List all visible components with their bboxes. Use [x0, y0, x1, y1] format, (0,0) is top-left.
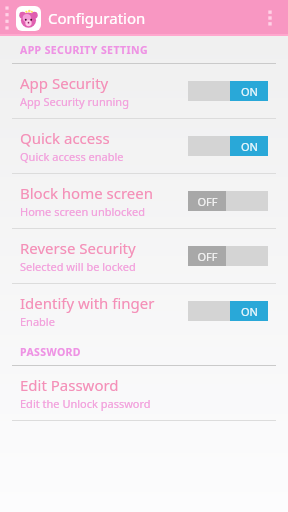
- staticText: PASSWORD: [20, 345, 81, 359]
- staticText: APP SECURITY SETTING: [20, 43, 148, 57]
- staticText: App Security: [20, 73, 109, 93]
- staticText: ON: [241, 84, 258, 99]
- button[interactable]: App Security: [0, 64, 288, 118]
- button[interactable]: Switch on: [188, 81, 268, 101]
- staticText: OFF: [197, 194, 218, 209]
- staticText: ON: [241, 304, 258, 319]
- button[interactable]: Switch off: [188, 191, 268, 211]
- button[interactable]: Identify with finger: [0, 284, 288, 338]
- staticText: Reverse Security: [20, 238, 136, 258]
- staticText: Block home screen: [20, 183, 154, 203]
- staticText: App Security running: [20, 94, 129, 109]
- staticText: Selected will be locked: [20, 259, 136, 274]
- staticText: OFF: [197, 249, 218, 264]
- button[interactable]: Switch off: [188, 246, 268, 266]
- staticText: Edit Password: [20, 375, 119, 395]
- staticText: Quick access: [20, 128, 110, 148]
- button[interactable]: Switch on: [188, 136, 268, 156]
- button[interactable]: Switch on: [188, 301, 268, 321]
- button[interactable]: Reverse Security: [0, 229, 288, 283]
- staticText: ON: [241, 139, 258, 154]
- staticText: Home screen unblocked: [20, 204, 146, 219]
- button[interactable]: Open navigation drawer: [3, 3, 11, 33]
- button[interactable]: App icon: [16, 6, 41, 31]
- button[interactable]: Block home screen: [0, 174, 288, 228]
- button[interactable]: More options: [266, 8, 274, 28]
- button[interactable]: Quick access: [0, 119, 288, 173]
- staticText: Quick access enable: [20, 149, 124, 164]
- staticText: Edit the Unlock password: [20, 396, 151, 411]
- staticText: Identify with finger: [20, 293, 155, 313]
- button[interactable]: Edit Password: [0, 366, 288, 420]
- staticText: Enable: [20, 314, 55, 329]
- staticText: Configuration: [48, 8, 146, 28]
